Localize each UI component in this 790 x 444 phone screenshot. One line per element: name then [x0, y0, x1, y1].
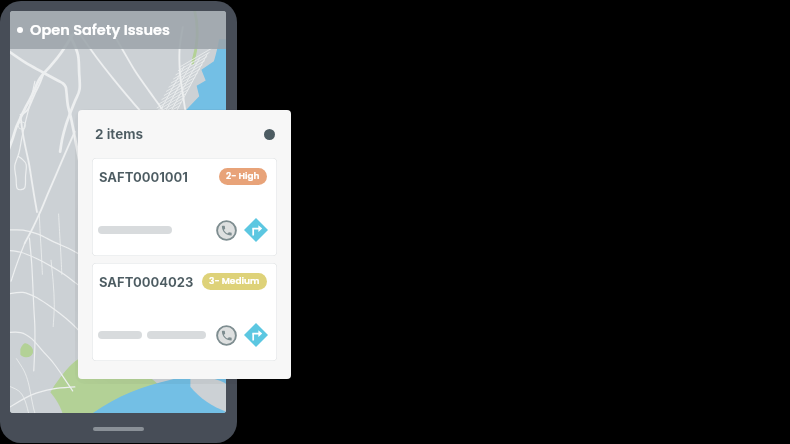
staticText: SAFT0004023 — [99, 274, 194, 290]
button[interactable]: More options — [264, 129, 275, 140]
staticText: 2- High — [226, 170, 260, 183]
button[interactable]: Directions — [244, 323, 268, 347]
button[interactable]: Call — [216, 325, 237, 346]
staticText: 3- Medium — [209, 275, 260, 288]
button[interactable]: SAFT0001001 — [92, 158, 277, 256]
button[interactable]: Open Safety Issues — [10, 11, 226, 49]
staticText: SAFT0001001 — [99, 169, 188, 185]
button[interactable]: SAFT0004023 — [92, 263, 277, 361]
button[interactable]: Call — [216, 220, 237, 241]
staticText: Open Safety Issues — [30, 20, 170, 40]
staticText: 2 items — [95, 126, 144, 142]
button[interactable]: Directions — [244, 218, 268, 242]
